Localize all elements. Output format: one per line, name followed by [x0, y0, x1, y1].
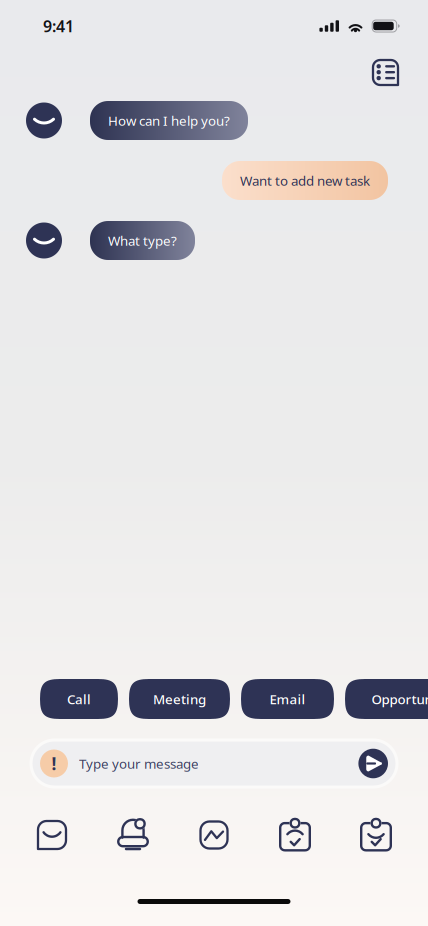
staticText: Call — [67, 690, 91, 708]
staticText: Email — [269, 690, 305, 708]
staticText: 9:41 — [43, 15, 74, 37]
staticText: Opportunity — [371, 690, 428, 708]
staticText: Want to add new task — [240, 172, 370, 189]
button[interactable]: Call — [40, 679, 118, 719]
button[interactable]: Chat — [11, 818, 92, 852]
staticText: How can I help you? — [108, 112, 230, 129]
staticText: What type? — [108, 232, 177, 249]
staticText: Type your message — [79, 755, 199, 772]
button[interactable]: Insights — [173, 818, 254, 852]
button[interactable]: Tasks — [373, 60, 398, 85]
button[interactable]: Tasks — [254, 818, 335, 852]
button[interactable]: Meeting — [129, 679, 230, 719]
button[interactable]: Notifications — [92, 818, 173, 852]
staticText: ! — [51, 752, 56, 775]
button[interactable]: Email — [241, 679, 334, 719]
button[interactable]: Completed — [335, 818, 416, 852]
staticText: Meeting — [153, 690, 206, 708]
button[interactable]: Send — [358, 749, 388, 778]
button[interactable]: Opportunity — [345, 679, 428, 719]
